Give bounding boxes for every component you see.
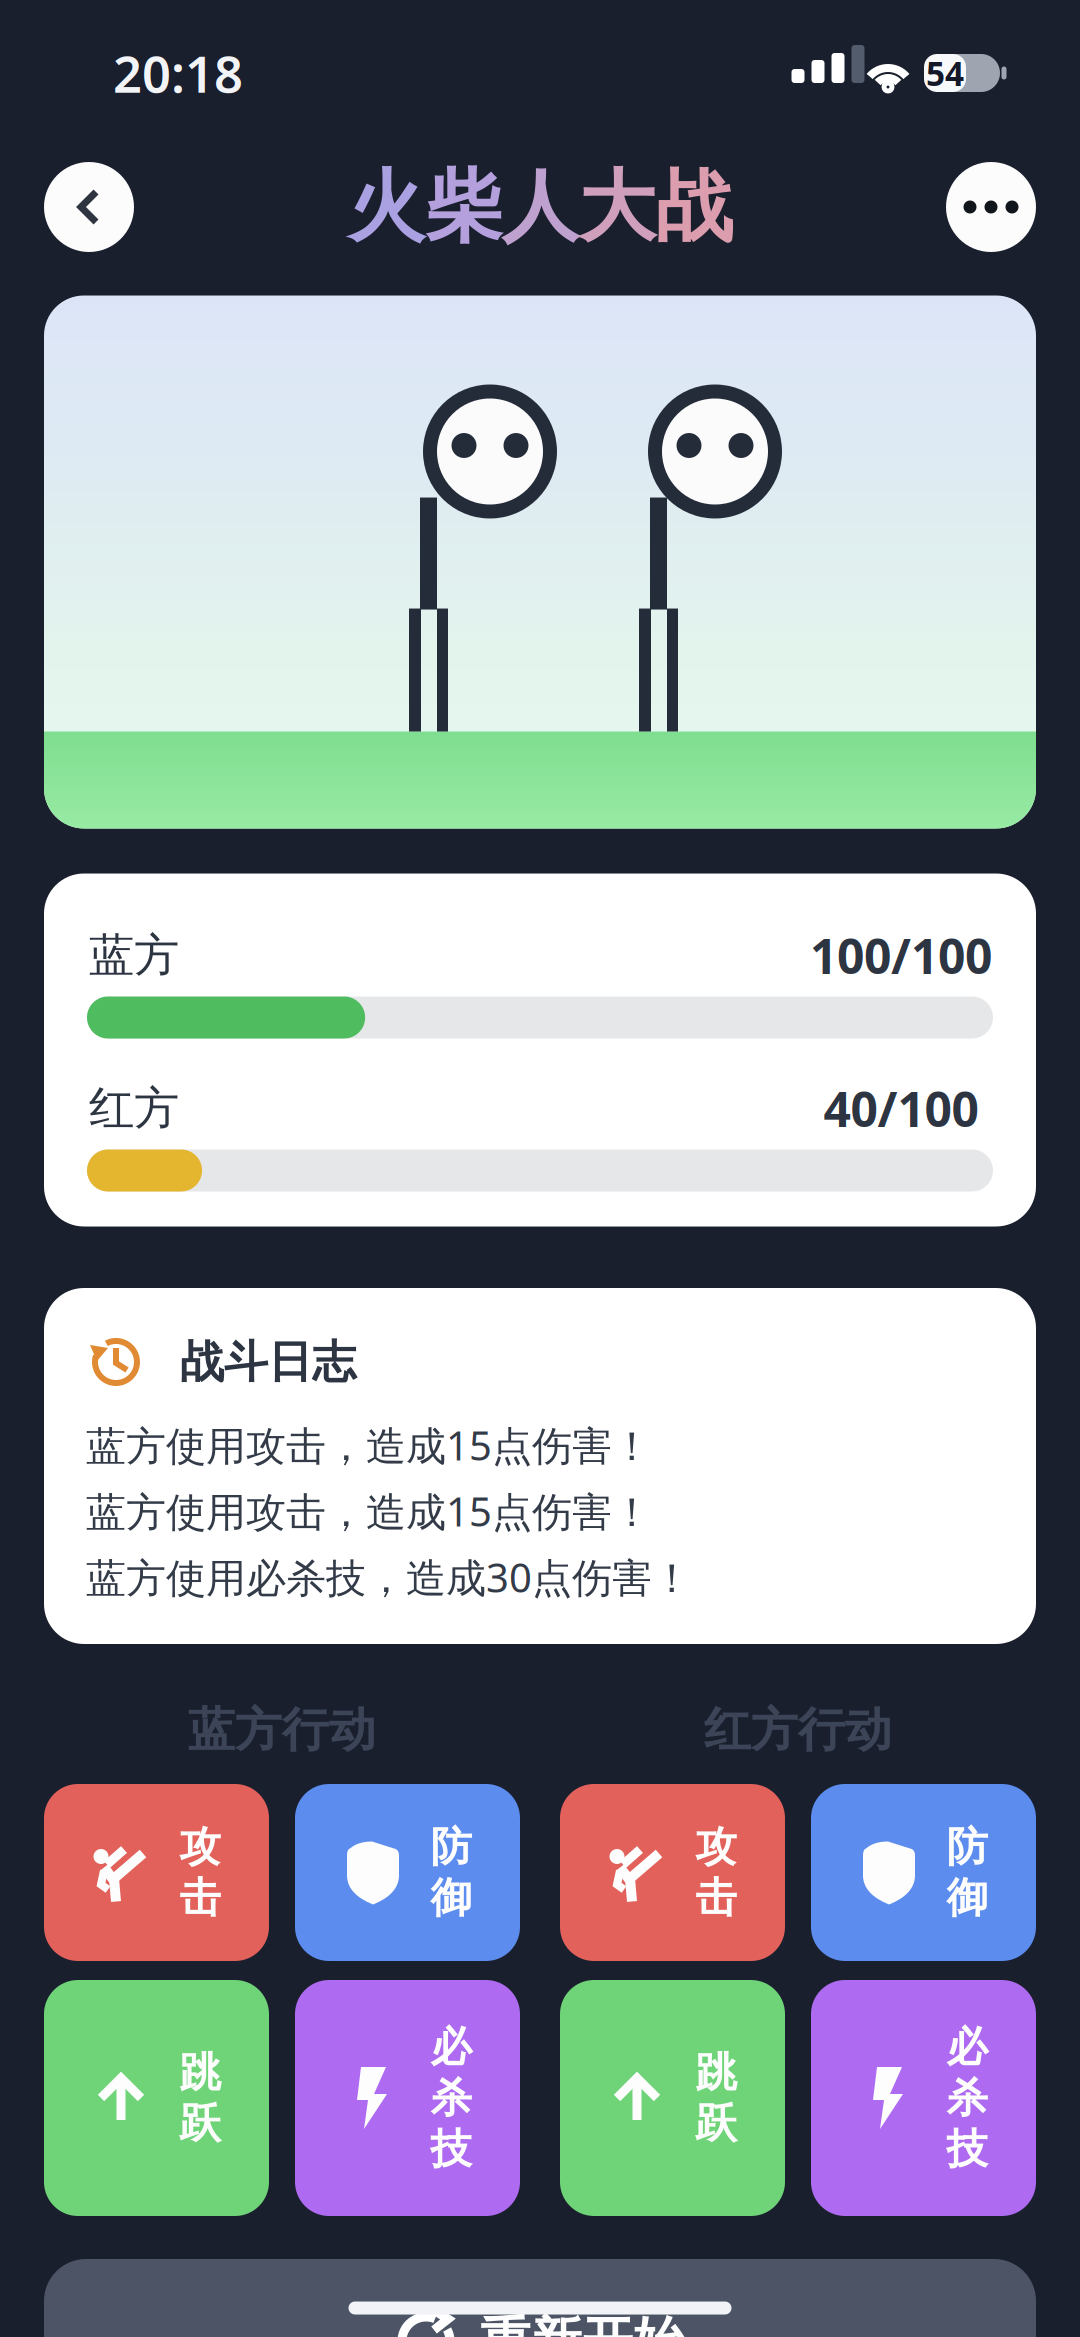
staticText: 防 [946,1822,987,1872]
staticText: 必 [430,2022,471,2072]
staticText: 红方行动 [704,1701,892,1759]
staticText: 跳 [179,2047,220,2098]
staticText: 40/100 [823,1077,978,1140]
staticText: 人 [501,159,578,254]
staticText: 54 [926,51,964,95]
staticText: 蓝方使用攻击，造成15点伤害！ [86,1418,652,1471]
button[interactable]: 攻 [44,1784,269,1961]
staticText: 击 [179,1873,220,1923]
staticText: 蓝方使用攻击，造成15点伤害！ [86,1484,652,1537]
staticText: 蓝方行动 [188,1701,376,1759]
button[interactable]: 必 [295,1980,520,2216]
staticText: 蓝方 [89,928,179,983]
staticText: 战斗日志 [180,1335,356,1389]
staticText: 杀 [430,2073,471,2123]
staticText: 防 [430,1822,471,1872]
button[interactable]: 跳 [44,1980,269,2216]
staticText: 红方 [89,1081,179,1136]
staticText: 跃 [695,2098,736,2149]
staticText: 御 [946,1873,987,1923]
staticText: 技 [430,2124,471,2174]
button[interactable]: Back [44,162,134,252]
button[interactable]: 攻 [560,1784,785,1961]
staticText: 跳 [695,2047,736,2098]
staticText: 御 [430,1873,471,1923]
staticText: 火 [347,159,424,254]
staticText: 100/100 [810,924,992,987]
staticText: 重新开始 [480,2310,684,2337]
staticText: 技 [946,2124,987,2174]
staticText: 杀 [946,2073,987,2123]
staticText: 蓝方使用必杀技，造成30点伤害！ [86,1550,692,1603]
button[interactable]: 跳 [560,1980,785,2216]
button[interactable]: More options [946,162,1036,252]
staticText: 柴 [424,159,501,254]
staticText: 攻 [695,1822,736,1872]
button[interactable]: 防 [295,1784,520,1961]
staticText: 攻 [179,1822,220,1872]
button[interactable]: 重新开始 [44,2259,1036,2337]
button[interactable]: 必 [811,1980,1036,2216]
staticText: 20:18 [113,39,243,107]
staticText: 必 [946,2022,987,2072]
staticText: 跃 [179,2098,220,2149]
staticText: 战 [655,159,732,254]
staticText: 大 [578,159,655,254]
button[interactable]: 防 [811,1784,1036,1961]
staticText: 击 [695,1873,736,1923]
